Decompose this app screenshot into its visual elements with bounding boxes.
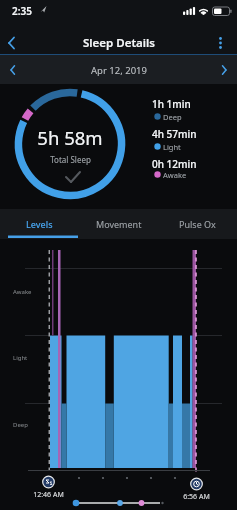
staticText: Movement: [96, 218, 142, 230]
button[interactable]: [2, 58, 24, 80]
staticText: 0h 12min: [152, 157, 197, 171]
staticText: Apr 12, 2019: [91, 64, 147, 77]
button[interactable]: Levels: [0, 209, 79, 239]
staticText: Light: [13, 354, 28, 362]
staticText: Deep: [163, 112, 182, 122]
button[interactable]: [210, 32, 232, 54]
staticText: Light: [163, 142, 181, 152]
button[interactable]: [2, 32, 24, 54]
staticText: Sleep Details: [83, 35, 155, 51]
staticText: 2:35: [12, 4, 32, 18]
staticText: 1h 1min: [152, 97, 191, 111]
staticText: Pulse Ox: [179, 218, 216, 230]
button[interactable]: Movement: [79, 209, 158, 239]
staticText: 4h 57min: [152, 127, 197, 141]
staticText: Awake: [13, 288, 32, 296]
button[interactable]: [213, 58, 235, 80]
staticText: Total Sleep: [50, 154, 91, 165]
button[interactable]: Pulse Ox: [158, 209, 237, 239]
staticText: Deep: [13, 421, 28, 429]
staticText: Awake: [163, 170, 187, 180]
staticText: Levels: [26, 218, 53, 230]
staticText: 6:56 AM: [183, 492, 210, 502]
button[interactable]: [185, 473, 208, 496]
staticText: 12:46 AM: [33, 490, 64, 500]
button[interactable]: [37, 471, 60, 494]
staticText: 5h 58m: [37, 125, 103, 150]
